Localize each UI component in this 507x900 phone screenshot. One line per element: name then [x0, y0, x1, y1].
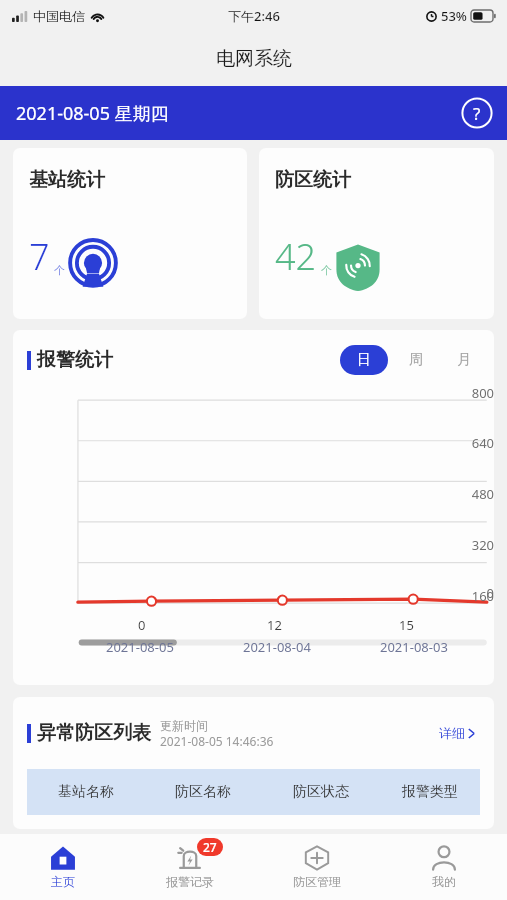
- staticText: 下午2:46: [228, 7, 280, 25]
- staticText: 报警统计: [37, 348, 113, 372]
- staticText: 12: [267, 616, 282, 634]
- staticText: 防区统计: [275, 168, 351, 192]
- staticText: 基站统计: [29, 168, 105, 192]
- staticText: 2021-08-05: [106, 638, 174, 656]
- button[interactable]: 详细: [435, 721, 480, 745]
- staticText: 防区名称: [175, 783, 231, 801]
- staticText: 报警记录: [166, 874, 214, 889]
- staticText: 月: [457, 351, 471, 369]
- button[interactable]: 27: [126, 834, 253, 900]
- button[interactable]: 主页: [0, 834, 126, 900]
- staticText: 个: [54, 263, 65, 277]
- staticText: 2021-08-05 星期四: [16, 101, 169, 126]
- staticText: 周: [409, 351, 423, 369]
- staticText: 800: [430, 384, 494, 402]
- staticText: 0: [430, 584, 494, 602]
- staticText: 我的: [432, 874, 456, 889]
- staticText: 320: [430, 536, 494, 554]
- staticText: 15: [399, 616, 414, 634]
- button[interactable]: 防区统计: [259, 148, 494, 319]
- staticText: 2021-08-04: [243, 638, 311, 656]
- button[interactable]: 基站统计: [13, 148, 247, 319]
- button[interactable]: 我的: [380, 834, 507, 900]
- button[interactable]: 防区管理: [253, 834, 380, 900]
- staticText: 更新时间: [160, 718, 208, 733]
- staticText: 异常防区列表: [37, 721, 151, 745]
- staticText: 2021-08-05 14:46:36: [160, 733, 274, 749]
- button[interactable]: 月: [450, 345, 478, 375]
- staticText: 基站名称: [58, 783, 114, 801]
- staticText: 电网系统: [216, 47, 292, 71]
- staticText: 53%: [441, 7, 467, 25]
- staticText: 42: [275, 232, 317, 281]
- staticText: 2021-08-03: [380, 638, 448, 656]
- staticText: 中国电信: [33, 8, 85, 24]
- staticText: 640: [430, 434, 494, 452]
- staticText: 主页: [51, 874, 75, 889]
- staticText: 详细: [439, 725, 465, 741]
- staticText: 7: [29, 232, 50, 281]
- staticText: 480: [430, 485, 494, 503]
- button[interactable]: 帮助: [461, 97, 493, 129]
- staticText: 防区管理: [293, 874, 341, 889]
- staticText: 160: [430, 587, 494, 605]
- button[interactable]: 日: [340, 345, 388, 375]
- staticText: 报警类型: [402, 783, 458, 801]
- staticText: 0: [138, 616, 146, 634]
- staticText: ?: [473, 102, 481, 125]
- staticText: 个: [321, 263, 332, 277]
- staticText: 27: [203, 839, 217, 855]
- button[interactable]: 周: [402, 345, 430, 375]
- staticText: 日: [357, 351, 371, 369]
- staticText: 防区状态: [293, 783, 349, 801]
